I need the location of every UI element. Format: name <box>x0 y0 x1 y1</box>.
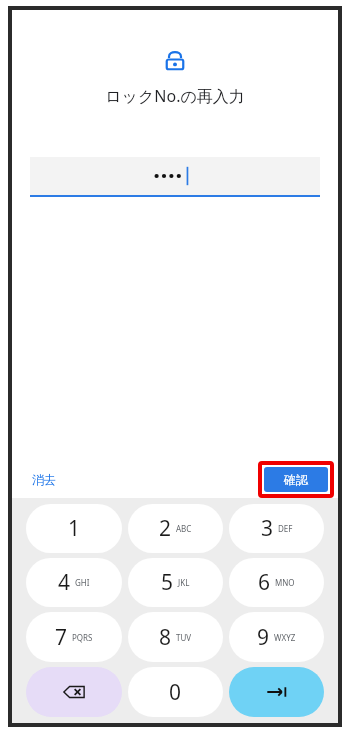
staticText: 6 <box>258 568 271 597</box>
staticText: 5 <box>161 568 174 597</box>
button[interactable]: 3 <box>229 504 324 553</box>
staticText: ロックNo.の再入力 <box>105 85 245 107</box>
button[interactable]: 5 <box>128 558 223 607</box>
staticText: 4 <box>58 568 71 597</box>
button[interactable]: 1 <box>26 504 122 553</box>
staticText: DEF <box>278 523 293 534</box>
staticText: 9 <box>257 623 270 652</box>
button[interactable]: 9 <box>229 612 324 662</box>
staticText: PQRS <box>72 632 93 643</box>
button[interactable] <box>30 157 320 197</box>
staticText: TUV <box>176 632 192 643</box>
staticText: JKL <box>178 577 190 588</box>
staticText: WXYZ <box>274 632 296 643</box>
button[interactable]: Backspace <box>26 667 122 717</box>
button[interactable]: 0 <box>128 667 223 717</box>
button[interactable]: 8 <box>128 612 223 662</box>
staticText: 3 <box>261 514 274 543</box>
other: Lock <box>162 48 188 74</box>
staticText: 確認 <box>284 472 308 487</box>
staticText: MNO <box>275 577 295 588</box>
staticText: 2 <box>159 514 172 543</box>
staticText: 8 <box>159 623 172 652</box>
button[interactable]: 4 <box>26 558 122 607</box>
button[interactable]: 確認 <box>264 467 328 492</box>
staticText: 1 <box>68 514 81 543</box>
button[interactable]: 6 <box>229 558 324 607</box>
staticText: ABC <box>176 523 192 534</box>
button[interactable]: Enter <box>229 667 324 717</box>
staticText: 7 <box>55 623 68 652</box>
button[interactable]: 2 <box>128 504 223 553</box>
button[interactable]: 消去 <box>28 468 60 491</box>
button[interactable]: 7 <box>26 612 122 662</box>
staticText: 0 <box>169 678 182 707</box>
staticText: GHI <box>75 577 90 588</box>
